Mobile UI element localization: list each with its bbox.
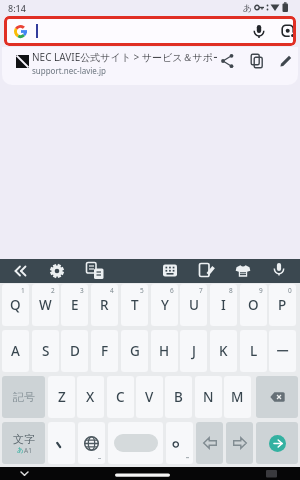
staticText: H bbox=[159, 342, 170, 360]
button[interactable] bbox=[226, 422, 253, 464]
button[interactable] bbox=[83, 259, 107, 283]
button[interactable] bbox=[48, 422, 75, 464]
staticText: L bbox=[250, 342, 258, 360]
staticText: V bbox=[145, 388, 154, 406]
staticText: T bbox=[131, 296, 139, 314]
button[interactable] bbox=[9, 259, 33, 283]
button[interactable] bbox=[108, 422, 163, 464]
button[interactable] bbox=[78, 422, 105, 464]
button[interactable]: R bbox=[91, 284, 118, 326]
button[interactable] bbox=[256, 376, 298, 418]
button[interactable] bbox=[4, 16, 296, 46]
button[interactable] bbox=[255, 467, 289, 480]
button[interactable]: E bbox=[61, 284, 88, 326]
staticText: Q bbox=[10, 296, 21, 314]
staticText: W bbox=[39, 296, 52, 314]
button[interactable]: V bbox=[136, 376, 163, 418]
staticText: A bbox=[11, 342, 20, 360]
staticText: Z bbox=[58, 388, 66, 406]
staticText: 1 bbox=[21, 286, 25, 295]
staticText: 7 bbox=[199, 286, 203, 295]
button[interactable]: 文字 bbox=[2, 422, 45, 464]
staticText: I bbox=[221, 296, 226, 314]
button[interactable]: B bbox=[165, 376, 192, 418]
button[interactable] bbox=[248, 52, 266, 70]
staticText: あ bbox=[17, 446, 24, 454]
button[interactable]: Q bbox=[2, 284, 29, 326]
button[interactable]: K bbox=[210, 330, 237, 372]
button[interactable]: X bbox=[77, 376, 104, 418]
button[interactable]: A bbox=[2, 330, 29, 372]
button[interactable]: O bbox=[240, 284, 267, 326]
staticText: 6 bbox=[170, 286, 174, 295]
button[interactable] bbox=[252, 24, 266, 39]
staticText: U bbox=[189, 296, 199, 314]
button[interactable] bbox=[277, 52, 295, 70]
staticText: G bbox=[130, 342, 140, 360]
staticText: S bbox=[42, 342, 50, 360]
staticText: J bbox=[192, 342, 196, 360]
staticText: P bbox=[278, 296, 287, 314]
staticText: R bbox=[100, 296, 109, 314]
staticText: 8:14 bbox=[8, 2, 26, 14]
button[interactable] bbox=[166, 422, 193, 464]
staticText: 0 bbox=[288, 286, 292, 295]
button[interactable]: D bbox=[61, 330, 88, 372]
button[interactable]: T bbox=[121, 284, 148, 326]
staticText: E bbox=[71, 296, 79, 314]
staticText: C bbox=[116, 388, 125, 406]
button[interactable]: J bbox=[180, 330, 207, 372]
staticText: 文字 bbox=[13, 432, 35, 446]
button[interactable] bbox=[196, 422, 223, 464]
button[interactable]: N bbox=[195, 376, 222, 418]
button[interactable]: G bbox=[121, 330, 148, 372]
staticText: B bbox=[174, 388, 183, 406]
staticText: F bbox=[101, 342, 109, 360]
staticText: 4 bbox=[110, 286, 114, 295]
button[interactable]: Y bbox=[151, 284, 178, 326]
staticText: 8 bbox=[229, 286, 233, 295]
button[interactable] bbox=[45, 259, 69, 283]
button[interactable]: P bbox=[269, 284, 296, 326]
button[interactable]: W bbox=[32, 284, 59, 326]
button[interactable]: M bbox=[224, 376, 251, 418]
button[interactable]: ー bbox=[269, 330, 296, 372]
staticText: 9 bbox=[259, 286, 263, 295]
staticText: M bbox=[231, 388, 244, 406]
staticText: N bbox=[203, 388, 214, 406]
button[interactable]: NEC LAVIE公式サイト > サービス＆サポー… bbox=[2, 47, 298, 85]
button[interactable] bbox=[219, 52, 237, 70]
staticText: D bbox=[70, 342, 80, 360]
staticText: O bbox=[248, 296, 259, 314]
button[interactable]: U bbox=[180, 284, 207, 326]
button[interactable]: H bbox=[151, 330, 178, 372]
button[interactable]: S bbox=[32, 330, 59, 372]
staticText: support.nec-lavie.jp bbox=[32, 65, 106, 76]
button[interactable]: F bbox=[91, 330, 118, 372]
staticText: あ bbox=[243, 2, 253, 13]
staticText: NEC LAVIE公式サイト > サービス＆サポー… bbox=[32, 50, 217, 64]
staticText: Y bbox=[161, 296, 169, 314]
button[interactable] bbox=[231, 259, 255, 283]
button[interactable]: 記号 bbox=[2, 376, 45, 418]
staticText: ー bbox=[276, 343, 290, 360]
staticText: 5 bbox=[140, 286, 144, 295]
button[interactable]: Z bbox=[48, 376, 75, 418]
button[interactable] bbox=[8, 467, 42, 480]
staticText: 2 bbox=[51, 286, 55, 295]
button[interactable] bbox=[158, 259, 182, 283]
staticText: K bbox=[219, 342, 228, 360]
button[interactable] bbox=[267, 259, 291, 283]
staticText: 記号 bbox=[13, 390, 35, 404]
staticText: X bbox=[86, 388, 95, 406]
button[interactable] bbox=[195, 259, 219, 283]
button[interactable] bbox=[256, 422, 298, 464]
staticText: A1 bbox=[24, 446, 32, 455]
button[interactable]: C bbox=[107, 376, 134, 418]
staticText: 3 bbox=[80, 286, 84, 295]
button[interactable]: L bbox=[240, 330, 267, 372]
button[interactable] bbox=[281, 24, 295, 38]
button[interactable]: I bbox=[210, 284, 237, 326]
